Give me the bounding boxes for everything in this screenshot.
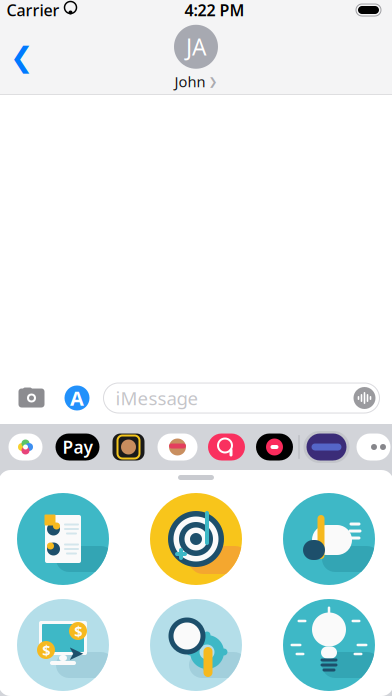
staticText: 4:22 PM xyxy=(184,0,244,21)
staticText: ❮ xyxy=(10,41,33,73)
button[interactable]: More apps xyxy=(353,430,392,464)
staticText: Pay xyxy=(62,435,92,458)
staticText: ❯ xyxy=(208,75,217,87)
staticText: ➤ xyxy=(67,642,84,664)
button[interactable]: Camera xyxy=(12,381,50,415)
button[interactable]: Images xyxy=(202,430,250,464)
button[interactable]: SEO sticker xyxy=(150,599,242,691)
button[interactable]: iMessage xyxy=(103,383,379,413)
staticText: $ xyxy=(42,640,50,660)
staticText: John xyxy=(174,72,205,91)
button[interactable]: Pay per click sticker xyxy=(17,599,109,691)
button[interactable]: Apps xyxy=(60,381,93,414)
staticText: Carrier xyxy=(6,0,59,21)
staticText: $ xyxy=(74,621,82,641)
staticText: JA xyxy=(186,32,206,62)
button[interactable]: Apple Pay xyxy=(50,430,104,464)
staticText: iMessage xyxy=(115,386,198,410)
button[interactable]: Megaphone sticker xyxy=(283,493,375,585)
button[interactable]: Target sticker xyxy=(150,493,242,585)
button[interactable]: Back xyxy=(0,26,44,88)
button[interactable]: Report sticker xyxy=(17,493,109,585)
button[interactable]: Sticker Pack xyxy=(299,430,353,464)
button[interactable]: JA xyxy=(162,21,230,93)
button[interactable]: Digital Touch xyxy=(250,430,298,464)
staticText: A xyxy=(70,385,84,411)
button[interactable]: Idea sticker xyxy=(283,599,375,691)
button[interactable]: Photos xyxy=(0,430,50,464)
button[interactable]: Memoji xyxy=(104,430,152,464)
button[interactable]: Memoji Stickers xyxy=(152,430,202,464)
